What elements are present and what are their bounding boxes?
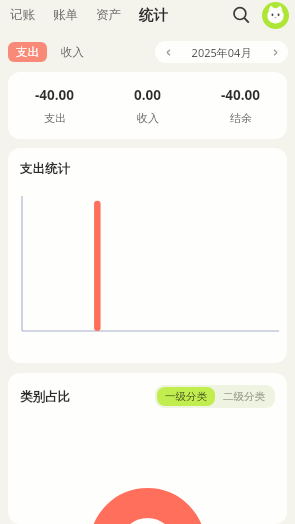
staticText: 类别占比 — [20, 389, 70, 405]
button[interactable]: -40.00 — [8, 72, 287, 139]
button[interactable]: Next month — [262, 41, 288, 63]
button[interactable]: Search — [226, 0, 256, 30]
button[interactable]: 二级分类 — [215, 387, 273, 406]
staticText: 结余 — [230, 111, 252, 125]
staticText: -40.00 — [35, 86, 75, 104]
staticText: 二级分类 — [223, 390, 265, 403]
staticText: -40.00 — [221, 86, 261, 104]
button[interactable]: 一级分类 — [157, 387, 215, 406]
staticText: 收入 — [137, 111, 159, 125]
staticText: 记账 — [10, 7, 35, 23]
staticText: 支出 — [44, 111, 66, 125]
button[interactable]: Previous month — [155, 41, 288, 63]
staticText: 0.00 — [134, 86, 161, 104]
staticText: 支出 — [16, 45, 39, 59]
staticText: 资产 — [96, 7, 121, 23]
button[interactable]: 账单 — [51, 3, 80, 27]
staticText: 统计 — [139, 6, 168, 24]
button[interactable]: 记账 — [8, 3, 37, 27]
staticText: 支出统计 — [20, 161, 70, 177]
button[interactable]: Previous month — [155, 41, 181, 63]
button[interactable]: 支出 — [8, 42, 47, 62]
button[interactable]: Profile — [262, 2, 289, 29]
staticText: 2025年04月 — [181, 45, 262, 60]
staticText: 一级分类 — [165, 390, 207, 403]
button[interactable]: 统计 — [137, 2, 170, 28]
staticText: 收入 — [61, 45, 84, 59]
button[interactable]: 收入 — [57, 42, 88, 62]
staticText: 账单 — [53, 7, 78, 23]
button[interactable]: 资产 — [94, 3, 123, 27]
